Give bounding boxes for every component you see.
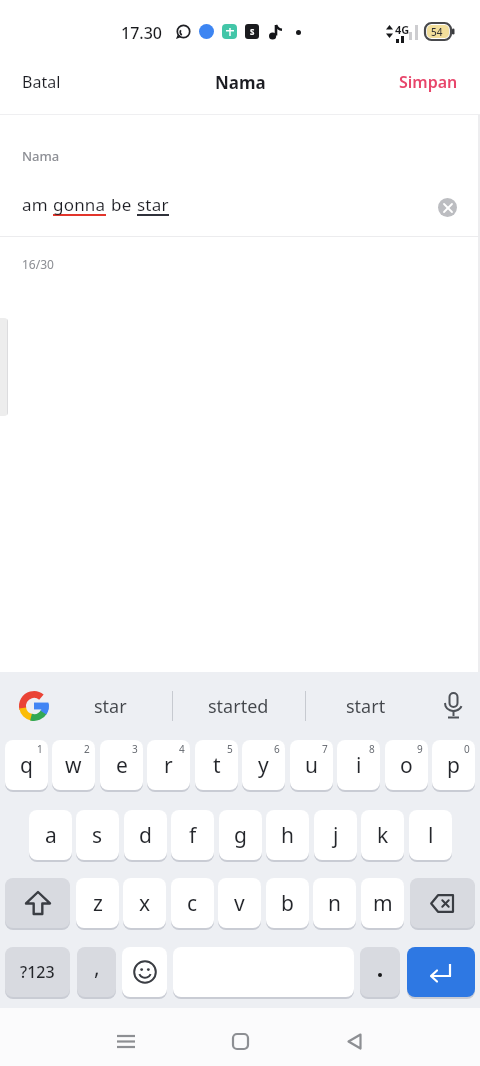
staticText: o [400,751,413,780]
staticText: y [258,751,269,780]
button[interactable]: j [314,810,357,860]
button[interactable]: n [313,878,356,928]
staticText: j [333,821,339,850]
button[interactable]: started [173,680,304,732]
button[interactable] [407,947,475,997]
button[interactable]: a [29,810,72,860]
staticText: 54 [431,25,443,39]
button[interactable]: l [409,810,452,860]
button[interactable]: f [171,810,214,860]
staticText: q [20,751,33,780]
staticText: star [94,694,127,719]
staticText: m [373,889,393,918]
button[interactable]: s [76,810,119,860]
button[interactable]: u [290,740,333,790]
staticText: start [346,694,386,719]
button[interactable] [360,947,400,997]
button[interactable]: o [385,740,428,790]
staticText: 9 [417,742,423,756]
staticText: 5 [227,742,233,756]
staticText: 2 [84,742,90,756]
staticText: x [139,889,151,918]
staticText: 17.30 [121,22,162,44]
button[interactable] [5,878,70,928]
staticText: w [65,751,82,780]
staticText: 0 [464,742,470,756]
staticText: k [377,821,389,850]
staticText: 1 [37,742,43,756]
button[interactable]: i [337,740,380,790]
staticText: be [111,193,132,216]
button[interactable]: ?123 [5,947,70,997]
staticText: e [116,751,128,780]
staticText: 3 [132,742,138,756]
staticText: 16/30 [22,256,54,272]
button[interactable]: z [76,878,119,928]
staticText: started [208,694,269,719]
button[interactable]: w [52,740,95,790]
button[interactable]: t [195,740,238,790]
staticText: am [22,193,48,216]
button[interactable]: v [218,878,261,928]
staticText: a [45,821,57,850]
staticText: 7 [322,742,328,756]
staticText: h [281,821,294,850]
button[interactable]: x [123,878,166,928]
button[interactable] [122,947,167,997]
button[interactable]: , [77,947,116,997]
staticText: c [187,889,198,918]
staticText: S [250,26,255,37]
button[interactable] [438,198,457,217]
staticText: b [281,889,294,918]
staticText: f [189,821,197,850]
button[interactable]: d [124,810,167,860]
button[interactable]: star [60,680,160,732]
staticText: d [139,821,152,850]
staticText: 8 [369,742,375,756]
button[interactable] [108,1027,144,1055]
staticText: r [164,751,173,780]
button[interactable]: Simpan [399,71,458,93]
staticText: u [305,751,318,780]
button[interactable] [436,688,470,724]
staticText: 6 [274,742,280,756]
staticText: t [213,751,221,780]
staticText: 4G [395,22,410,37]
button[interactable] [410,878,475,928]
staticText: n [328,889,341,918]
button[interactable]: h [266,810,309,860]
button[interactable]: g [219,810,262,860]
staticText: v [234,889,245,918]
button[interactable]: q [5,740,48,790]
staticText: 4 [179,742,185,756]
staticText: star [137,193,169,216]
button[interactable]: Batal [22,71,61,93]
button[interactable]: r [147,740,190,790]
staticText: p [447,751,460,780]
button[interactable]: b [266,878,309,928]
staticText: , [94,953,100,982]
button[interactable]: am [22,193,169,216]
button[interactable] [336,1027,372,1055]
staticText: Nama [22,147,60,165]
staticText: Nama [215,71,266,94]
button[interactable] [222,1027,258,1055]
staticText: g [234,821,247,850]
staticText: z [93,889,103,918]
staticText: ?123 [20,961,55,983]
button[interactable]: k [361,810,404,860]
button[interactable]: e [100,740,143,790]
staticText: l [428,821,434,850]
button[interactable]: y [242,740,285,790]
button[interactable]: m [361,878,404,928]
button[interactable]: p [432,740,475,790]
staticText: s [92,821,103,850]
button[interactable]: start [306,680,426,732]
staticText: gonna [53,193,106,216]
button[interactable]: c [171,878,214,928]
staticText: i [356,751,362,780]
